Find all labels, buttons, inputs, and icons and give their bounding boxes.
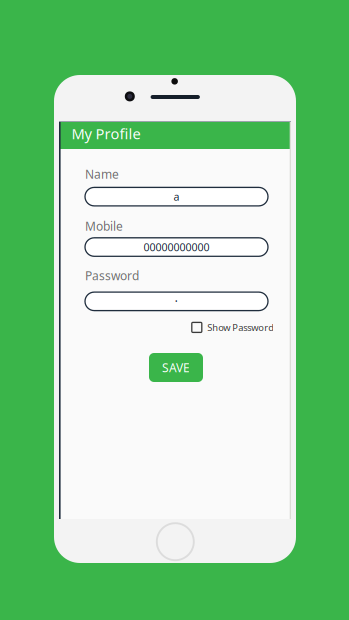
staticText: a [173, 190, 179, 204]
staticText: Show Password [207, 321, 274, 334]
staticText: My Profile [72, 124, 141, 143]
button[interactable]: SAVE [149, 353, 203, 382]
staticText: Name [85, 166, 119, 182]
staticText: • [175, 297, 178, 306]
staticText: Mobile [85, 218, 123, 234]
staticText: Password [85, 268, 139, 283]
button[interactable]: Show Password [192, 321, 274, 333]
staticText: 00000000000 [143, 240, 209, 254]
staticText: SAVE [162, 359, 190, 375]
